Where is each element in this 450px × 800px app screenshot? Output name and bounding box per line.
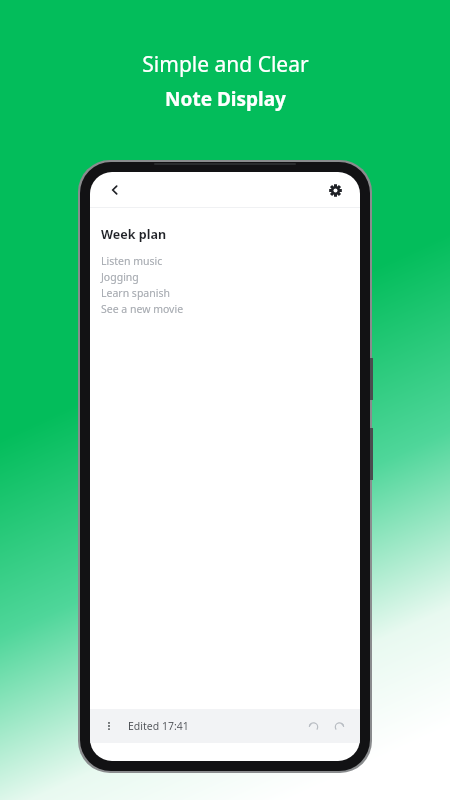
staticText: Learn spanish — [101, 286, 170, 300]
button[interactable]: Redo — [326, 713, 352, 739]
staticText: Listen music — [101, 254, 163, 268]
staticText: Jogging — [101, 270, 139, 284]
button[interactable]: More options — [96, 713, 122, 739]
staticText: Simple and Clear — [142, 50, 309, 79]
staticText: Edited 17:41 — [128, 719, 189, 733]
button[interactable]: Settings — [322, 177, 348, 203]
staticText: See a new movie — [101, 302, 184, 316]
button[interactable]: Undo — [300, 713, 326, 739]
staticText: Note Display — [165, 86, 286, 112]
staticText: Week plan — [101, 226, 167, 243]
button[interactable]: Back — [102, 177, 128, 203]
